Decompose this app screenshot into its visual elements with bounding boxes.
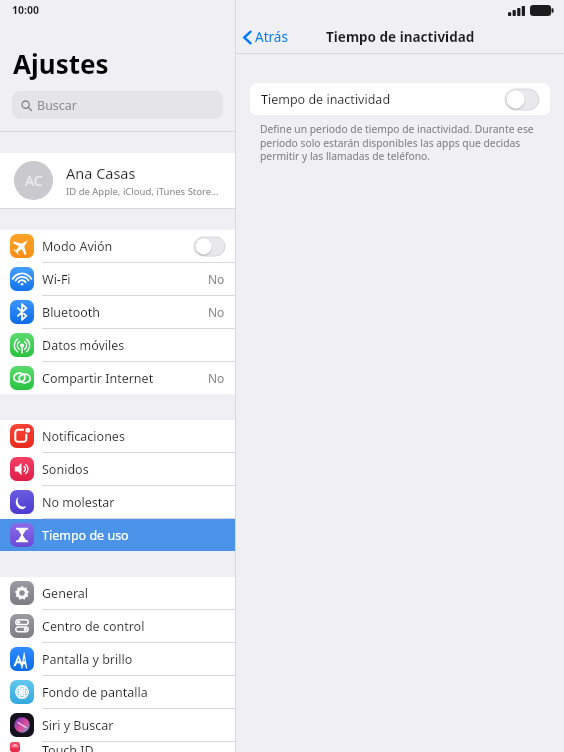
staticText: Sonidos xyxy=(42,461,89,478)
staticText: Tiempo de inactividad xyxy=(261,91,391,108)
button[interactable]: Buscar xyxy=(12,91,223,119)
staticText: No xyxy=(208,271,225,287)
staticText: Buscar xyxy=(37,97,78,114)
button[interactable]: Notificaciones xyxy=(0,420,235,452)
staticText: No xyxy=(208,370,225,386)
staticText: Fondo de pantalla xyxy=(42,684,148,701)
button[interactable]: Atrás xyxy=(242,28,288,46)
staticText: AC xyxy=(25,171,43,190)
staticText: Pantalla y brillo xyxy=(42,651,133,668)
staticText: No xyxy=(208,304,225,320)
staticText: Wi-Fi xyxy=(42,271,71,288)
staticText: Centro de control xyxy=(42,618,145,635)
button[interactable]: Activar xyxy=(505,89,539,110)
staticText: Touch ID xyxy=(42,742,94,752)
staticText: Notificaciones xyxy=(42,428,125,445)
staticText: Atrás xyxy=(255,28,288,46)
button[interactable]: Modo Avión xyxy=(0,230,235,262)
staticText: Compartir Internet xyxy=(42,370,154,387)
staticText: Define un periodo de tiempo de inactivid… xyxy=(260,122,550,163)
button[interactable]: Fondo de pantalla xyxy=(0,676,235,708)
button[interactable]: Pantalla y brillo xyxy=(0,643,235,675)
button[interactable]: Tiempo de uso xyxy=(0,519,235,551)
button[interactable]: Tiempo de inactividad xyxy=(250,83,550,115)
staticText: Datos móviles xyxy=(42,337,125,354)
button[interactable]: Datos móviles xyxy=(0,329,235,361)
staticText: ID de Apple, iCloud, iTunes Store… xyxy=(66,185,219,198)
button[interactable]: Sonidos xyxy=(0,453,235,485)
button[interactable]: AC xyxy=(0,153,235,208)
staticText: Modo Avión xyxy=(42,238,113,255)
staticText: 10:00 xyxy=(12,3,39,17)
button[interactable]: Compartir Internet xyxy=(0,362,235,394)
button[interactable]: Centro de control xyxy=(0,610,235,642)
button[interactable]: Bluetooth xyxy=(0,296,235,328)
staticText: Tiempo de uso xyxy=(42,527,129,544)
staticText: Ana Casas xyxy=(66,163,136,183)
staticText: No molestar xyxy=(42,494,115,511)
button[interactable]: Siri y Buscar xyxy=(0,709,235,741)
staticText: Siri y Buscar xyxy=(42,717,114,734)
staticText: Ajustes xyxy=(13,46,109,81)
button[interactable]: Activar xyxy=(194,237,225,256)
staticText: General xyxy=(42,585,89,602)
staticText: Tiempo de inactividad xyxy=(326,28,475,46)
button[interactable]: Touch ID xyxy=(0,742,235,752)
staticText: Bluetooth xyxy=(42,304,101,321)
button[interactable]: Wi-Fi xyxy=(0,263,235,295)
button[interactable]: General xyxy=(0,577,235,609)
button[interactable]: No molestar xyxy=(0,486,235,518)
